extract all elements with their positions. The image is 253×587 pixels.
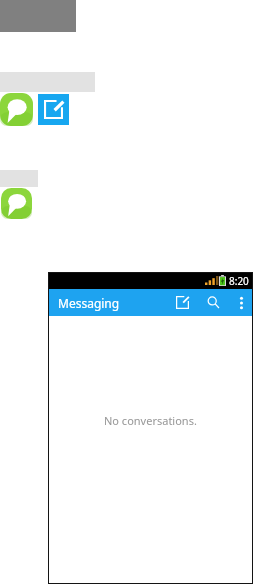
staticText: No conversations. bbox=[104, 413, 197, 428]
button[interactable]: Messaging app icon bbox=[1, 188, 32, 219]
button[interactable]: New message bbox=[167, 289, 198, 316]
button[interactable]: Messaging app icon bbox=[0, 93, 33, 126]
staticText: 8:20 bbox=[229, 274, 249, 288]
button[interactable]: New message icon bbox=[38, 94, 69, 125]
button[interactable]: More options bbox=[229, 289, 253, 316]
staticText: Messaging bbox=[58, 295, 120, 311]
button[interactable]: Search bbox=[198, 289, 229, 316]
